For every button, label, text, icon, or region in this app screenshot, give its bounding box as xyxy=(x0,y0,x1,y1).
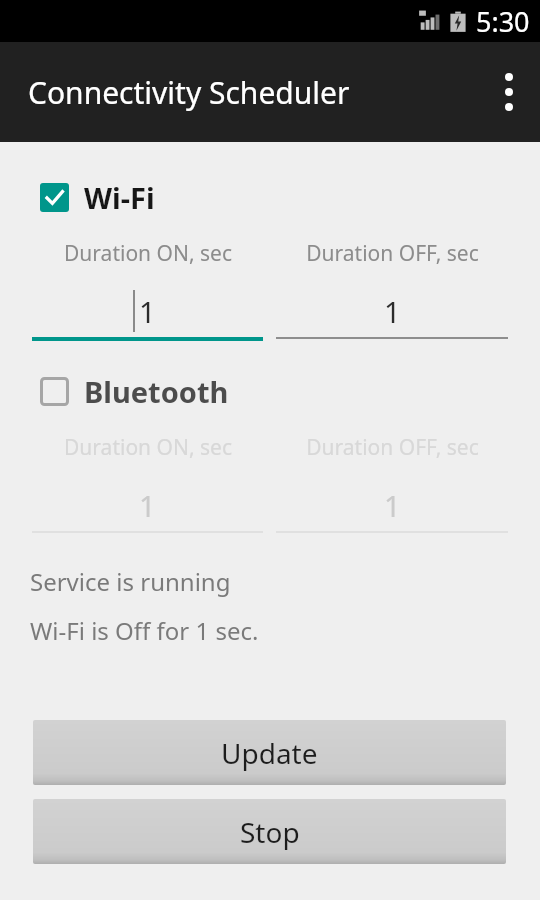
staticText: Duration ON, sec xyxy=(64,239,232,268)
staticText: Stop xyxy=(240,813,300,851)
staticText: Duration OFF, sec xyxy=(306,433,479,462)
staticText: Service is running xyxy=(30,565,231,598)
button[interactable]: Duration OFF, sec xyxy=(276,433,508,533)
staticText: Bluetooth xyxy=(84,372,229,411)
button[interactable]: Bluetooth xyxy=(40,372,540,411)
button[interactable]: More options xyxy=(478,42,540,142)
staticText: 1 xyxy=(139,486,156,525)
staticText: Duration ON, sec xyxy=(64,433,232,462)
staticText: Connectivity Scheduler xyxy=(28,72,350,113)
button[interactable]: Duration ON, sec xyxy=(32,239,263,341)
button[interactable]: Duration ON, sec xyxy=(32,433,263,533)
button[interactable]: Stop xyxy=(33,799,506,864)
staticText: Duration OFF, sec xyxy=(306,239,479,268)
staticText: 1 xyxy=(384,292,401,331)
staticText: Update xyxy=(221,734,318,772)
staticText: 1 xyxy=(139,292,156,331)
staticText: 5:30 xyxy=(476,3,530,40)
button[interactable]: Duration OFF, sec xyxy=(276,239,508,339)
staticText: Wi-Fi is Off for 1 sec. xyxy=(30,614,259,647)
staticText: Wi-Fi xyxy=(84,178,155,217)
button[interactable]: Update xyxy=(33,720,506,785)
staticText: 1 xyxy=(384,486,401,525)
button[interactable]: Wi-Fi xyxy=(40,178,540,217)
